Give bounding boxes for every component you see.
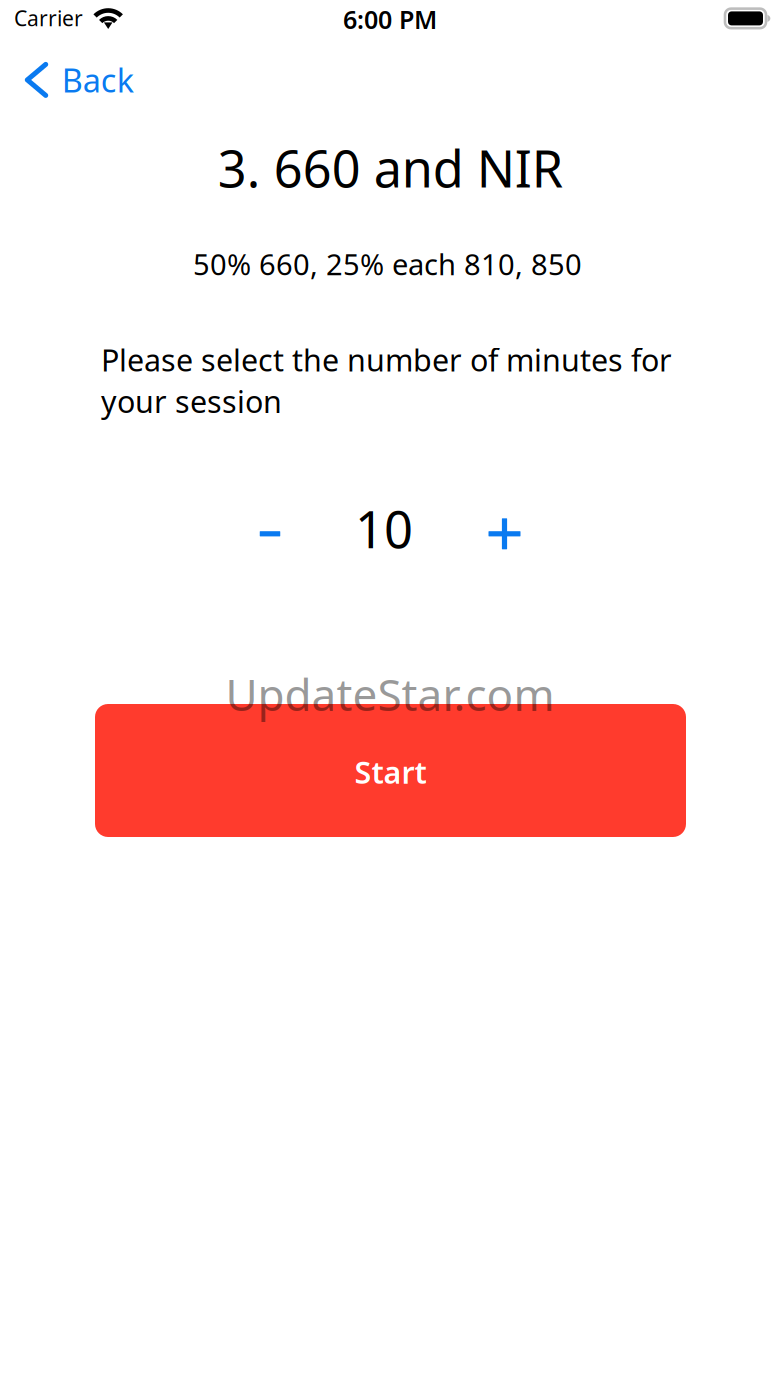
staticText: Carrier	[14, 4, 83, 33]
staticText: Please select the number of minutes for …	[101, 339, 672, 422]
button[interactable]: Start	[95, 704, 686, 837]
staticText: 3. 660 and NIR	[218, 134, 563, 202]
button[interactable]: Back	[1, 48, 150, 112]
staticText: 6:00 PM	[343, 2, 437, 36]
staticText: Start	[354, 751, 426, 793]
staticText: Back	[62, 58, 134, 102]
button[interactable]: Decrease minutes	[236, 500, 304, 568]
staticText: 50% 660, 25% each 810, 850	[193, 244, 582, 284]
staticText: UpdateStar.com	[225, 664, 554, 724]
staticText: 10	[355, 494, 413, 563]
button[interactable]: Increase minutes	[470, 500, 538, 568]
